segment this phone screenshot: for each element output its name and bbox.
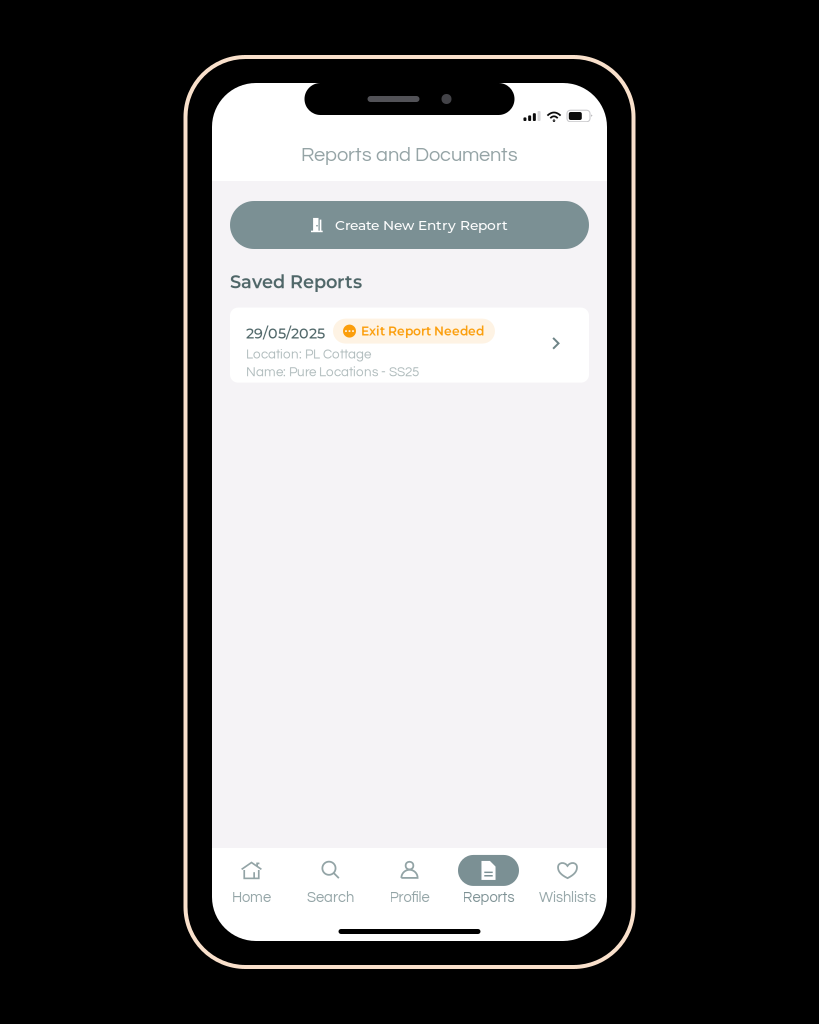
staticText: Profile [389, 890, 429, 905]
staticText: Create New Entry Report [335, 217, 508, 233]
button[interactable]: Profile [370, 854, 449, 906]
staticText: Saved Reports [230, 271, 362, 293]
staticText: Search [307, 890, 354, 905]
staticText: Location: PL Cottage [246, 348, 371, 361]
button[interactable]: Reports [449, 854, 528, 906]
staticText: Home [232, 890, 271, 905]
staticText: Exit Report Needed [361, 324, 484, 339]
staticText: Name: Pure Locations - SS25 [246, 365, 419, 379]
button[interactable]: Search [291, 854, 370, 906]
button[interactable]: Create New Entry Report [230, 201, 589, 249]
button[interactable]: Wishlists [528, 854, 607, 906]
button[interactable]: 29/05/2025 [230, 308, 589, 383]
staticText: Reports [462, 890, 514, 905]
button[interactable]: Home [212, 854, 291, 906]
staticText: Reports and Documents [301, 145, 518, 165]
staticText: Wishlists [539, 890, 596, 905]
staticText: 29/05/2025 [246, 325, 325, 342]
